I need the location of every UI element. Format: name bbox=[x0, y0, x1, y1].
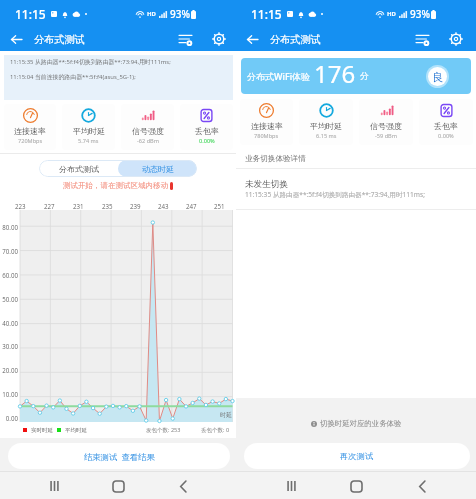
staticText: 176 bbox=[314, 58, 356, 90]
staticText: 实时时延 bbox=[31, 427, 53, 434]
staticText: 247 bbox=[186, 202, 197, 210]
button[interactable]: Settings bbox=[447, 30, 465, 48]
staticText: 11:15:04 当前连接的路由器**:5f:f4(asus_5G-1); bbox=[10, 73, 136, 81]
button[interactable]: 再次测试 bbox=[244, 443, 470, 469]
staticText: -62 dBm bbox=[137, 137, 159, 145]
staticText: 40.00 bbox=[0, 319, 18, 327]
staticText: 分 bbox=[360, 71, 369, 82]
staticText: 切换时延对应的业务体验 bbox=[320, 419, 402, 428]
staticText: 93% bbox=[410, 7, 430, 21]
staticText: 信号强度 bbox=[132, 126, 164, 136]
button[interactable]: 连接速率 bbox=[240, 99, 293, 145]
staticText: 时延 bbox=[220, 411, 232, 419]
staticText: 平均时延 bbox=[65, 427, 87, 434]
staticText: 发包个数: 253 bbox=[146, 426, 181, 434]
staticText: 连接速率 bbox=[251, 121, 283, 131]
staticText: 结束测试 查看结果 bbox=[84, 451, 155, 462]
staticText: 11:15 bbox=[251, 6, 282, 22]
button[interactable]: 丢包率 bbox=[419, 99, 473, 145]
staticText: 231 bbox=[73, 202, 84, 210]
staticText: 0.00 bbox=[0, 414, 18, 422]
staticText: 50.00 bbox=[0, 295, 18, 303]
button[interactable]: 结束测试 查看结果 bbox=[8, 443, 230, 469]
staticText: 分布式WiFi体验 bbox=[247, 70, 311, 82]
button[interactable]: 平均时延 bbox=[62, 104, 115, 150]
staticText: 30.00 bbox=[0, 342, 18, 350]
staticText: 93% bbox=[170, 7, 190, 21]
staticText: 0.00% bbox=[438, 132, 454, 140]
staticText: 测试开始，请在测试区域内移动 bbox=[63, 181, 168, 190]
staticText: 10.00 bbox=[0, 390, 18, 398]
staticText: 分布式测试 bbox=[34, 33, 85, 46]
staticText: 20.00 bbox=[0, 366, 18, 374]
staticText: 0.00% bbox=[199, 137, 215, 145]
button[interactable]: Back bbox=[411, 475, 433, 497]
button[interactable]: Home bbox=[345, 475, 367, 497]
staticText: 业务切换体验详情 bbox=[245, 154, 306, 164]
button[interactable]: 丢包率 bbox=[180, 104, 233, 150]
button[interactable]: 平均时延 bbox=[299, 99, 353, 145]
button[interactable]: Back bbox=[7, 30, 26, 49]
staticText: 连接速率 bbox=[14, 126, 46, 136]
staticText: 223 bbox=[15, 202, 26, 210]
button[interactable]: Back bbox=[243, 30, 262, 49]
staticText: 动态时延 bbox=[142, 164, 174, 174]
staticText: 良 bbox=[432, 70, 443, 84]
button[interactable]: History bbox=[176, 30, 194, 48]
staticText: 分布式测试 bbox=[270, 33, 321, 46]
staticText: HD bbox=[147, 10, 156, 18]
button[interactable]: 连接速率 bbox=[4, 104, 56, 150]
staticText: 227 bbox=[44, 202, 55, 210]
staticText: 251 bbox=[214, 202, 225, 210]
staticText: 720Mbps bbox=[18, 137, 43, 145]
button[interactable]: History bbox=[413, 30, 431, 48]
staticText: 再次测试 bbox=[340, 451, 374, 461]
button[interactable]: Back bbox=[172, 475, 194, 497]
staticText: 分布式测试 bbox=[59, 164, 99, 174]
staticText: 信号强度 bbox=[370, 121, 402, 131]
staticText: 80.00 bbox=[0, 223, 18, 231]
staticText: 11:15 bbox=[15, 6, 46, 22]
button[interactable]: 信号强度 bbox=[121, 104, 174, 150]
button[interactable]: 信号强度 bbox=[359, 99, 413, 145]
staticText: 丢包率 bbox=[434, 121, 458, 131]
button[interactable]: Recents bbox=[280, 475, 302, 497]
staticText: 60.00 bbox=[0, 271, 18, 279]
button[interactable]: Home bbox=[107, 475, 129, 497]
button[interactable]: 动态时延 bbox=[118, 160, 197, 177]
button[interactable]: Recents bbox=[43, 475, 65, 497]
staticText: -59 dBm bbox=[375, 132, 397, 140]
staticText: 平均时延 bbox=[310, 121, 342, 131]
staticText: 丢包个数: 0 bbox=[201, 426, 230, 434]
staticText: 丢包率 bbox=[195, 126, 219, 136]
button[interactable]: 分布式测试 bbox=[39, 160, 118, 177]
staticText: 239 bbox=[130, 202, 141, 210]
staticText: 平均时延 bbox=[73, 126, 105, 136]
staticText: 未发生切换 bbox=[245, 179, 288, 190]
button[interactable]: Settings bbox=[210, 30, 228, 48]
staticText: 243 bbox=[158, 202, 169, 210]
staticText: 6.15 ms bbox=[316, 132, 337, 140]
staticText: 11:15:35 从路由器**:5f:f4切换到路由器**:73:94,用时11… bbox=[245, 190, 425, 199]
staticText: 5.74 ms bbox=[78, 137, 99, 145]
staticText: 235 bbox=[102, 202, 113, 210]
staticText: HD bbox=[387, 10, 396, 18]
staticText: 11:15:35 从路由器**:5f:f4切换到路由器**:73:94,用时11… bbox=[10, 58, 171, 66]
staticText: 780Mbps bbox=[254, 132, 279, 140]
staticText: 70.00 bbox=[0, 247, 18, 255]
